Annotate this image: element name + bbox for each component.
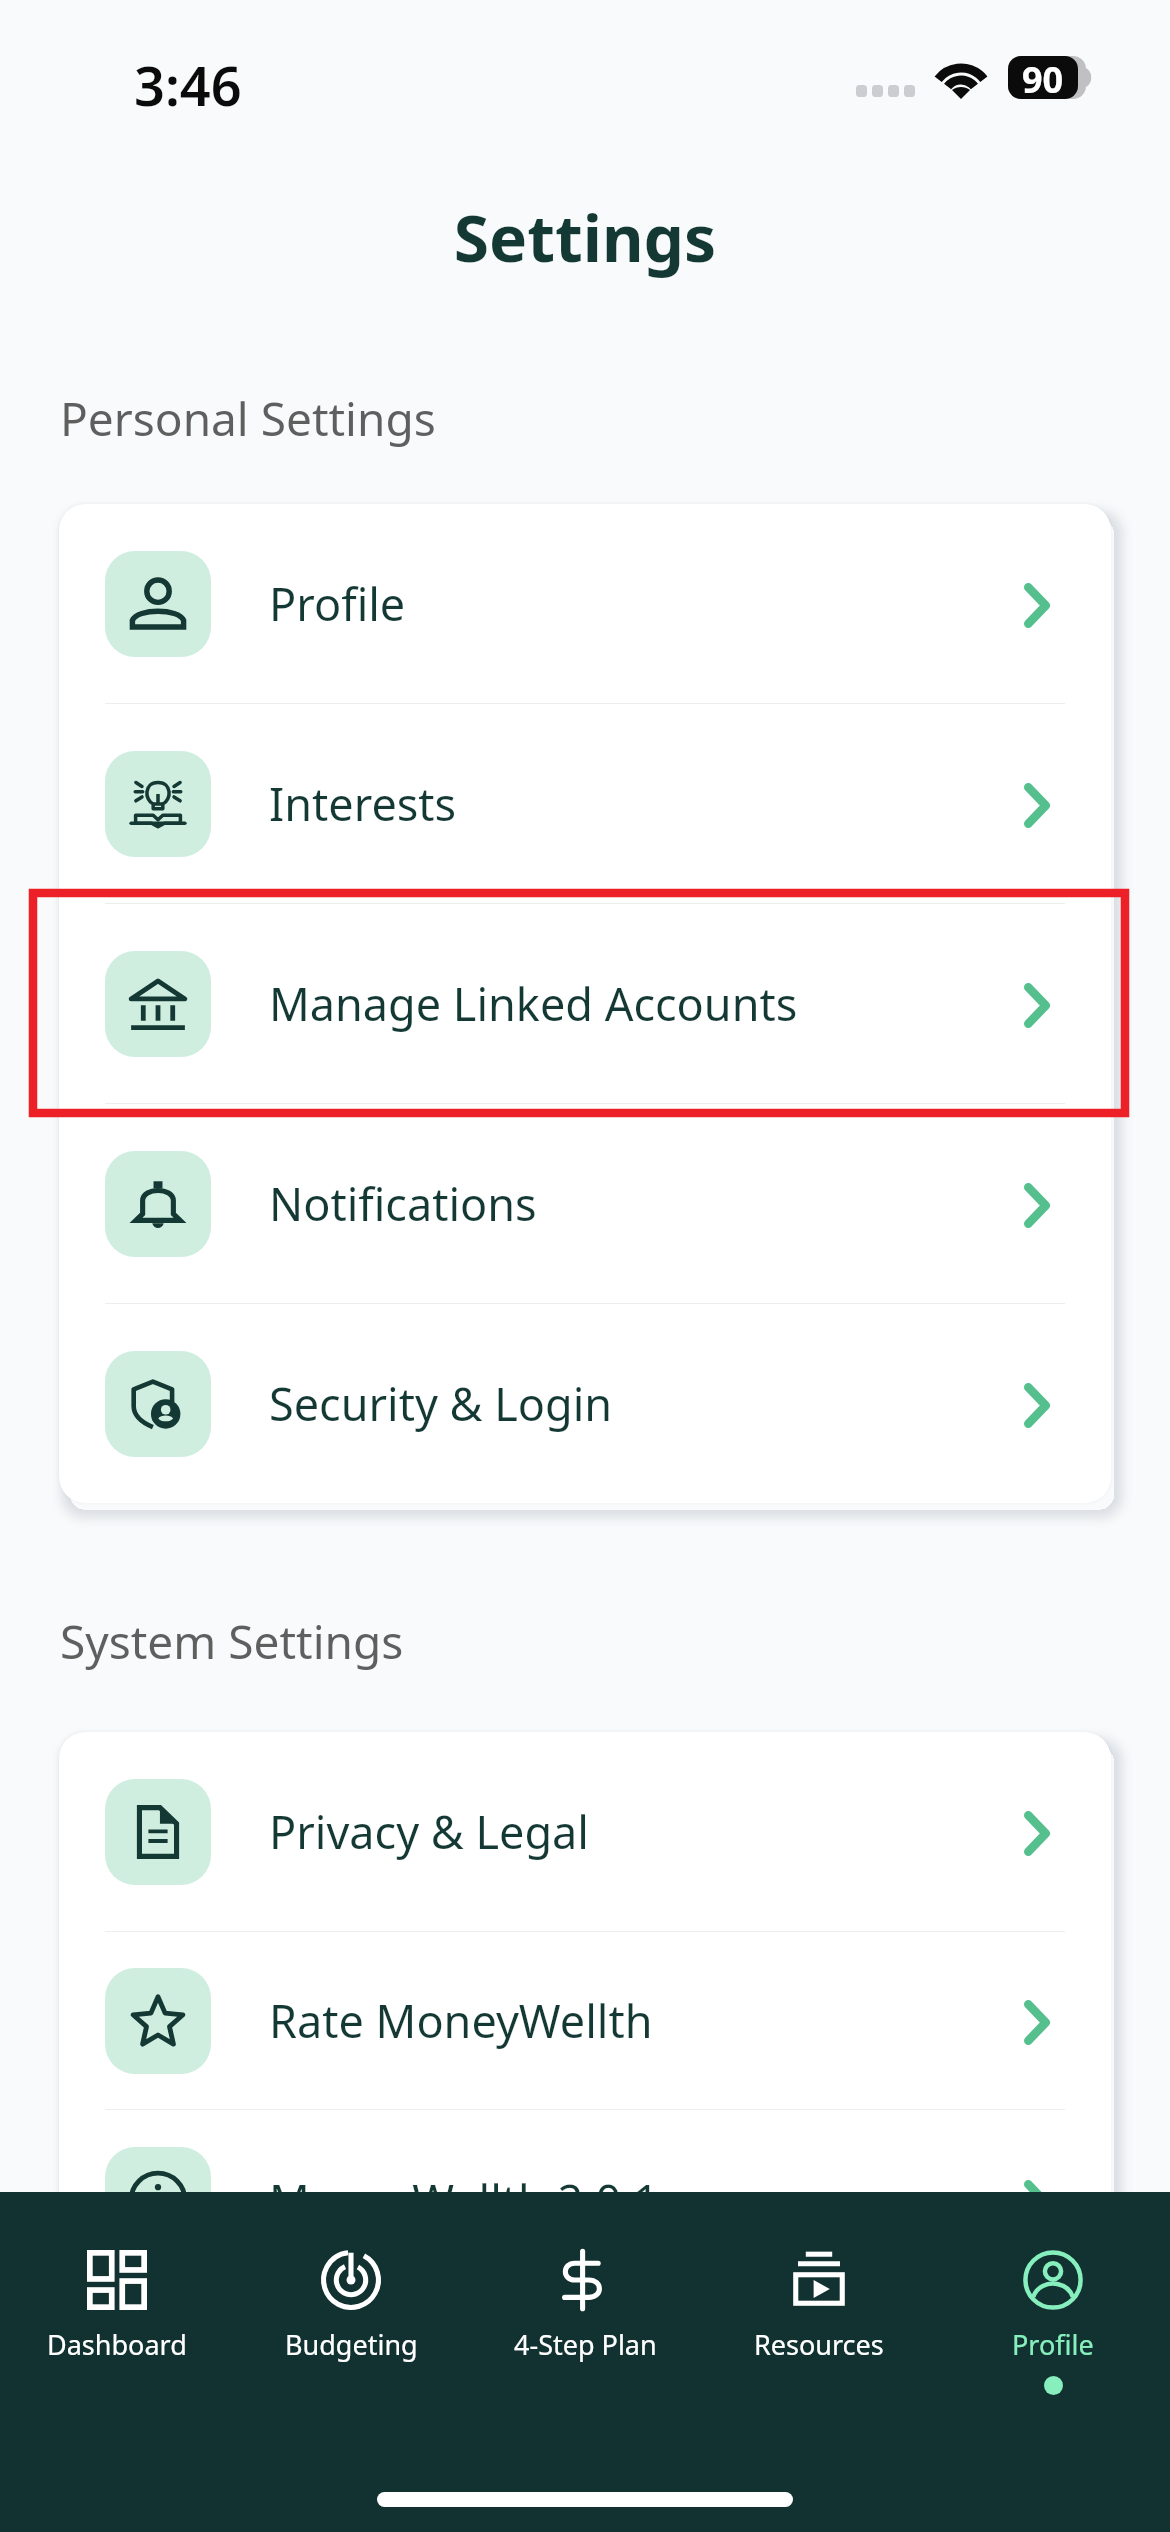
button[interactable]: Budgeting [234, 2250, 468, 2400]
staticText: MoneyWellth 2.0.1 [269, 2170, 659, 2231]
button[interactable]: Resources [702, 2250, 936, 2400]
button[interactable]: Security & Login [59, 1304, 1111, 1503]
staticText: Profile [269, 573, 406, 634]
staticText: Notifications [269, 1173, 537, 1234]
staticText: Rate MoneyWellth [269, 1990, 653, 2051]
button[interactable]: Profile [936, 2250, 1170, 2400]
staticText: Settings [0, 194, 1170, 281]
staticText: 4-Step Plan [514, 2326, 657, 2363]
staticText: System Settings [60, 1610, 404, 1673]
staticText: Resources [754, 2326, 884, 2363]
button[interactable]: 4-Step Plan [468, 2250, 702, 2400]
button[interactable]: MoneyWellth 2.0.1 [59, 2110, 1111, 2290]
button[interactable]: Dashboard [0, 2250, 234, 2400]
staticText: Privacy & Legal [269, 1801, 589, 1862]
staticText: 3:46 [134, 48, 242, 122]
staticText: 90 [1022, 56, 1064, 98]
staticText: Profile [1012, 2326, 1094, 2363]
button[interactable]: Profile [59, 504, 1111, 703]
staticText: Budgeting [285, 2326, 418, 2363]
staticText: Manage Linked Accounts [269, 973, 798, 1034]
staticText: Interests [269, 773, 457, 834]
staticText: Personal Settings [60, 387, 436, 450]
button[interactable]: Privacy & Legal [59, 1732, 1111, 1931]
button[interactable]: Interests [59, 704, 1111, 903]
staticText: Dashboard [47, 2326, 187, 2363]
button[interactable]: Rate MoneyWellth [59, 1932, 1111, 2109]
button[interactable]: Manage Linked Accounts [59, 904, 1111, 1103]
button[interactable]: Notifications [59, 1104, 1111, 1303]
staticText: Security & Login [269, 1373, 613, 1434]
